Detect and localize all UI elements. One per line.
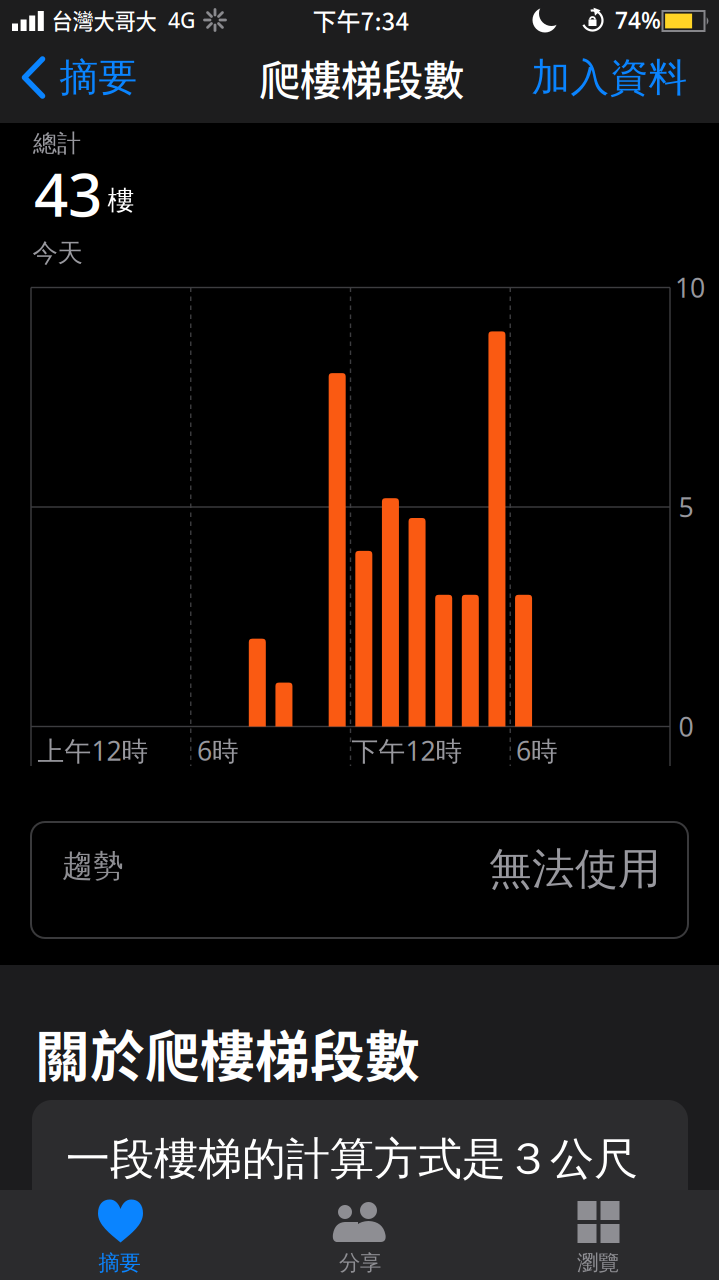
staticText: 下午12時 <box>351 733 462 768</box>
staticText: 4G <box>168 6 196 34</box>
staticText: 分享 <box>339 1250 381 1276</box>
staticText: 摘要 <box>98 1250 140 1276</box>
staticText: 無法使用 <box>489 843 661 895</box>
button[interactable]: 加入資料 <box>531 54 687 101</box>
staticText: 6時 <box>197 733 239 768</box>
staticText: 10 <box>675 270 705 305</box>
staticText: 瀏覽 <box>577 1250 619 1276</box>
staticText: 摘要 <box>59 54 137 101</box>
button[interactable]: 分享 <box>240 1190 480 1280</box>
staticText: 一段樓梯的計算方式是３公尺 <box>66 1132 638 1186</box>
staticText: 關於爬樓梯段數 <box>35 1013 420 1092</box>
staticText: 爬樓梯段數 <box>259 48 464 107</box>
staticText: 下午7:34 <box>312 3 409 37</box>
button[interactable]: 摘要 <box>20 54 137 101</box>
button[interactable]: 摘要 <box>0 1190 240 1280</box>
staticText: 43 <box>34 154 102 233</box>
staticText: 總計 <box>33 129 81 158</box>
staticText: 台灣大哥大 <box>51 5 156 35</box>
staticText: 樓 <box>107 184 134 217</box>
staticText: 0 <box>678 709 693 744</box>
staticText: 今天 <box>32 237 82 268</box>
staticText: 6時 <box>516 733 558 768</box>
staticText: 加入資料 <box>531 54 687 101</box>
button[interactable]: 瀏覽 <box>480 1190 719 1280</box>
staticText: 5 <box>678 489 693 525</box>
staticText: 趨勢 <box>62 847 124 885</box>
staticText: 上午12時 <box>37 733 148 768</box>
staticText: 74% <box>615 5 661 35</box>
